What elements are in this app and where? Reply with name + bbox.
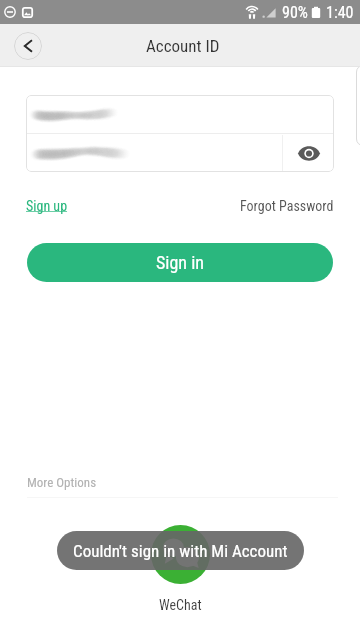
button[interactable]: Back — [14, 32, 42, 60]
staticText: Sign in — [156, 252, 205, 273]
staticText: Sign up — [26, 198, 68, 214]
staticText: 1:40 — [326, 3, 354, 22]
button[interactable] — [26, 95, 334, 133]
button[interactable]: Sign in — [27, 243, 333, 282]
staticText: Forgot Password — [240, 198, 334, 214]
button[interactable]: Sign up — [26, 198, 68, 214]
staticText: Account ID — [146, 36, 220, 56]
button[interactable]: Forgot Password — [240, 198, 334, 214]
staticText: 90% — [282, 3, 308, 22]
staticText: Couldn't sign in with Mi Account — [73, 541, 288, 561]
staticText: WeChat — [159, 597, 202, 613]
button[interactable] — [26, 134, 282, 172]
staticText: More Options — [27, 475, 97, 490]
button[interactable]: Show password — [283, 134, 334, 172]
button[interactable]: WeChat — [151, 525, 210, 613]
